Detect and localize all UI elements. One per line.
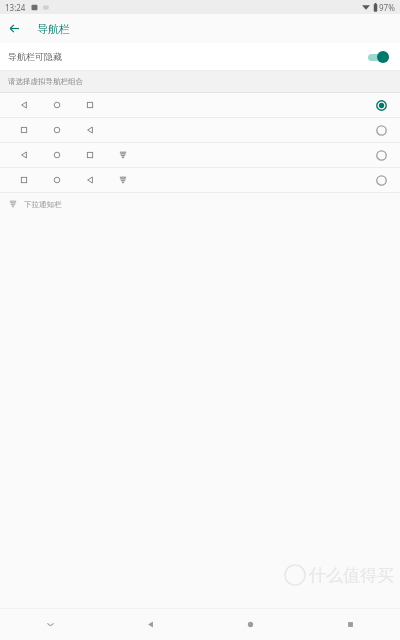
- staticText: 13:24: [5, 2, 26, 13]
- staticText: 下拉通知栏: [24, 200, 62, 209]
- staticText: 导航栏可隐藏: [8, 51, 62, 62]
- button[interactable]: Back: [0, 14, 29, 43]
- staticText: 导航栏: [37, 22, 70, 36]
- staticText: 请选择虚拟导航栏组合: [8, 77, 83, 86]
- button[interactable]: 导航栏可隐藏: [0, 43, 400, 70]
- button[interactable]: Back: [100, 609, 200, 640]
- button[interactable]: [0, 143, 400, 167]
- staticText: 什么值得买: [309, 565, 394, 586]
- button[interactable]: Collapse: [0, 609, 100, 640]
- button[interactable]: [0, 118, 400, 142]
- button[interactable]: [0, 93, 400, 117]
- button[interactable]: Home: [200, 609, 300, 640]
- staticText: 97%: [379, 2, 395, 13]
- button[interactable]: Recents: [300, 609, 400, 640]
- button[interactable]: [0, 168, 400, 192]
